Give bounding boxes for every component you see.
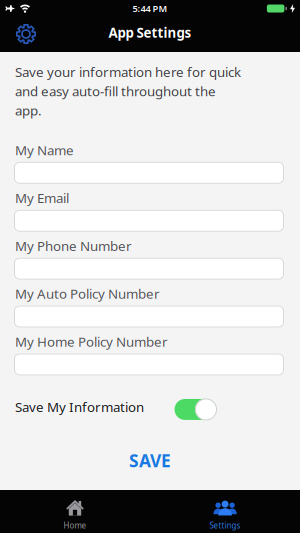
- button[interactable]: My Phone Number: [14, 258, 284, 280]
- button[interactable]: My Auto Policy Number: [14, 305, 284, 327]
- staticText: My Email: [15, 189, 69, 207]
- staticText: App Settings: [108, 24, 191, 41]
- button[interactable]: Home: [0, 490, 150, 533]
- staticText: My Name: [15, 141, 74, 159]
- staticText: Home: [63, 520, 86, 531]
- staticText: My Phone Number: [15, 237, 132, 255]
- staticText: SAVE: [129, 449, 171, 472]
- button[interactable]: My Name: [14, 162, 284, 184]
- button[interactable]: My Email: [14, 210, 284, 232]
- button[interactable]: Save My Information: [174, 398, 217, 421]
- staticText: My Auto Policy Number: [15, 285, 160, 302]
- button[interactable]: Settings: [0, 22, 36, 50]
- button[interactable]: SAVE: [129, 449, 171, 472]
- staticText: My Home Policy Number: [15, 333, 168, 350]
- button[interactable]: My Home Policy Number: [14, 353, 284, 375]
- staticText: Save My Information: [15, 398, 144, 416]
- staticText: Settings: [209, 520, 240, 531]
- staticText: Save your information here for quick and…: [15, 63, 241, 119]
- button[interactable]: Settings: [150, 490, 300, 533]
- staticText: 5:44 PM: [132, 2, 167, 15]
